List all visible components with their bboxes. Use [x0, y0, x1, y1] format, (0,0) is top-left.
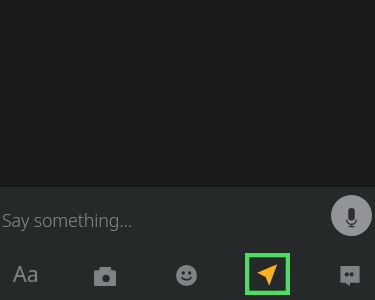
staticText: Say something...	[2, 208, 132, 232]
button[interactable]: Send location	[245, 253, 290, 295]
button[interactable]: Camera	[85, 256, 125, 296]
button[interactable]: Aa	[6, 253, 46, 293]
staticText: Aa	[13, 259, 39, 288]
button[interactable]: Say something...	[0, 186, 320, 244]
button[interactable]: Emoji	[166, 255, 206, 295]
button[interactable]: Record voice message	[331, 195, 372, 236]
button[interactable]: Stickers	[330, 256, 370, 296]
